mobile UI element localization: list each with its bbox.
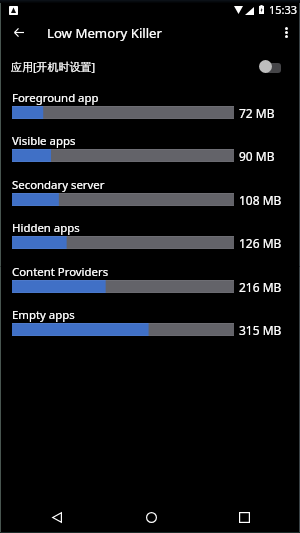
button[interactable]: Hidden apps [0, 220, 300, 251]
staticText: Content Providers [12, 264, 109, 280]
staticText: Low Memory Killer [47, 24, 162, 42]
button[interactable]: Foreground app [0, 90, 300, 121]
staticText: 216 MB [239, 279, 282, 295]
staticText: 应用[开机时设置] [11, 59, 96, 74]
button[interactable]: Content Providers [0, 264, 300, 295]
button[interactable]: Recent apps [216, 489, 272, 533]
staticText: Secondary server [12, 177, 105, 193]
staticText: Foreground app [12, 90, 99, 106]
button[interactable]: More options [272, 22, 300, 44]
button[interactable]: Secondary server [0, 177, 300, 208]
button[interactable]: Home [123, 489, 179, 533]
staticText: 126 MB [239, 235, 282, 251]
staticText: 72 MB [239, 105, 275, 121]
staticText: Empty apps [12, 307, 75, 323]
button[interactable]: Back [29, 489, 85, 533]
staticText: 90 MB [239, 148, 275, 164]
staticText: 15:33 [269, 2, 298, 17]
staticText: 108 MB [239, 192, 282, 208]
staticText: Visible apps [12, 133, 76, 149]
staticText: 315 MB [239, 322, 282, 338]
button[interactable]: Visible apps [0, 133, 300, 164]
button[interactable]: Empty apps [0, 307, 300, 338]
staticText: Hidden apps [12, 220, 80, 236]
button[interactable]: Back [2, 22, 36, 44]
button[interactable]: 应用[开机时设置] [0, 53, 300, 79]
